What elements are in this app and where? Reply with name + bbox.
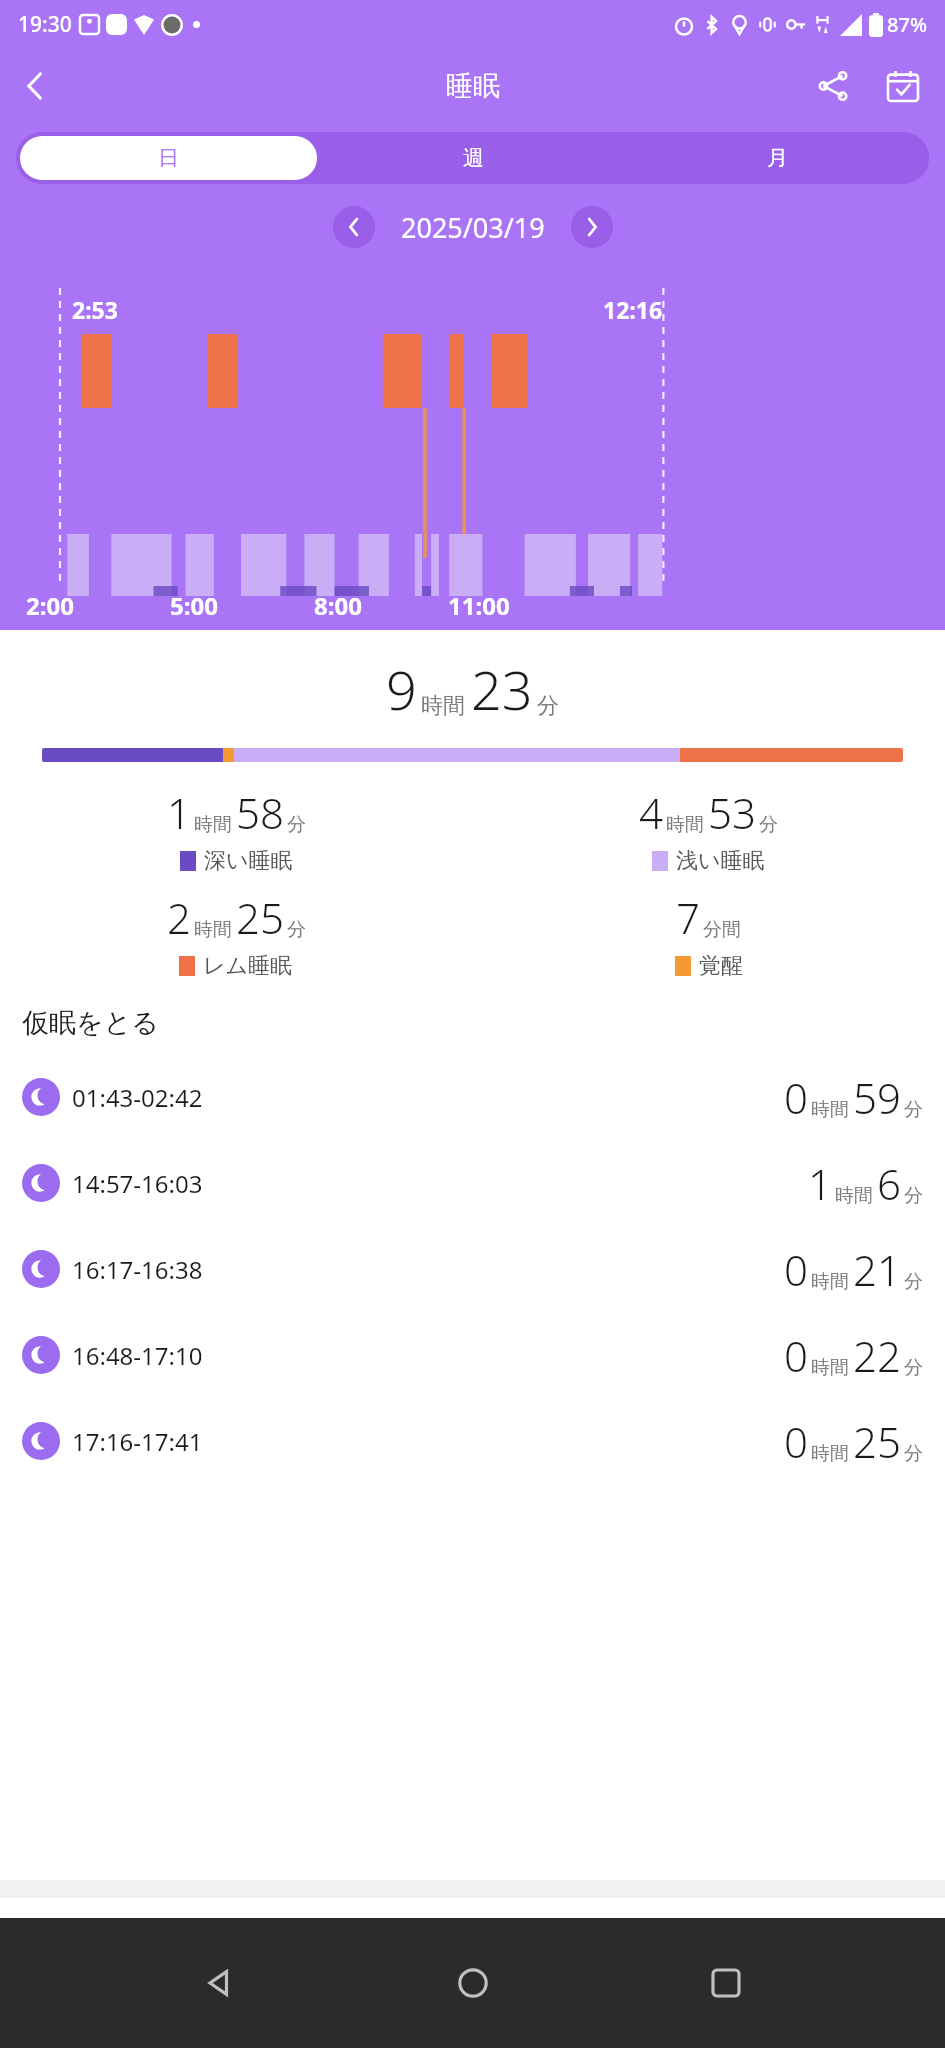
staticText: 53 [708, 784, 756, 841]
staticText: 時間 [811, 1270, 849, 1294]
button[interactable]: 月 [629, 136, 925, 180]
staticText: 分 [904, 1356, 923, 1380]
button[interactable]: Share [805, 58, 861, 114]
button[interactable]: 16:48-17:10 [0, 1312, 945, 1398]
staticText: 5:00 [170, 589, 218, 622]
staticText: 11:00 [448, 589, 510, 622]
staticText: 覚醒 [699, 952, 743, 980]
staticText: 7 [676, 889, 700, 946]
staticText: 分間 [703, 918, 741, 942]
staticText: 分 [904, 1442, 923, 1466]
button[interactable]: 14:57-16:03 [0, 1140, 945, 1226]
staticText: 0 [784, 1241, 808, 1298]
staticText: 睡眠 [446, 69, 500, 103]
staticText: 分 [287, 813, 306, 837]
button[interactable]: Back [184, 1948, 254, 2018]
staticText: 分 [904, 1270, 923, 1294]
button[interactable]: 週 [325, 136, 621, 180]
staticText: 9 [386, 652, 417, 726]
button[interactable]: Home [438, 1948, 508, 2018]
staticText: 月 [767, 145, 788, 171]
staticText: 浅い睡眠 [676, 847, 765, 875]
staticText: 0 [784, 1413, 808, 1470]
staticText: 分 [904, 1098, 923, 1122]
staticText: 1 [167, 784, 191, 841]
staticText: 分 [904, 1184, 923, 1208]
staticText: 01:43-02:42 [72, 1081, 203, 1114]
staticText: 14:57-16:03 [72, 1167, 203, 1200]
button[interactable]: 17:16-17:41 [0, 1398, 945, 1484]
staticText: 時間 [811, 1356, 849, 1380]
staticText: 日 [158, 145, 179, 171]
staticText: 87% [887, 11, 927, 38]
button[interactable]: 16:17-16:38 [0, 1226, 945, 1312]
staticText: 時間 [194, 918, 232, 942]
button[interactable]: 日 [20, 136, 317, 180]
staticText: 8:00 [314, 589, 362, 622]
staticText: 0 [784, 1069, 808, 1126]
staticText: 23 [471, 652, 533, 726]
staticText: 2:00 [26, 589, 74, 622]
staticText: 58 [236, 784, 284, 841]
staticText: 時間 [421, 692, 465, 720]
staticText: 22 [853, 1327, 901, 1384]
staticText: 深い睡眠 [204, 847, 293, 875]
staticText: 時間 [835, 1184, 873, 1208]
staticText: 16:17-16:38 [72, 1253, 203, 1286]
staticText: 59 [853, 1069, 901, 1126]
staticText: 分 [287, 918, 306, 942]
button[interactable]: Previous day [333, 206, 375, 248]
staticText: 時間 [811, 1442, 849, 1466]
staticText: 2:53 [72, 294, 118, 325]
button[interactable]: Calendar [875, 58, 931, 114]
staticText: 仮眠をとる [22, 1006, 159, 1040]
staticText: 0 [784, 1327, 808, 1384]
button[interactable]: Next day [571, 206, 613, 248]
staticText: 25 [853, 1413, 901, 1470]
staticText: 12:16 [603, 294, 663, 325]
staticText: 16:48-17:10 [72, 1339, 203, 1372]
button[interactable]: Recents [691, 1948, 761, 2018]
staticText: 4 [639, 784, 663, 841]
staticText: 25 [236, 889, 284, 946]
staticText: 17:16-17:41 [72, 1425, 203, 1458]
staticText: 6 [877, 1155, 901, 1212]
staticText: レム睡眠 [203, 952, 293, 980]
staticText: 2 [167, 889, 191, 946]
button[interactable]: Back [8, 58, 64, 114]
staticText: 分 [537, 692, 559, 720]
staticText: 分 [759, 813, 778, 837]
staticText: 時間 [194, 813, 232, 837]
button[interactable]: 01:43-02:42 [0, 1054, 945, 1140]
staticText: 時間 [666, 813, 704, 837]
staticText: 21 [853, 1241, 901, 1298]
staticText: 2025/03/19 [401, 209, 545, 246]
staticText: 時間 [811, 1098, 849, 1122]
staticText: 1 [808, 1155, 832, 1212]
staticText: 19:30 [18, 10, 72, 39]
staticText: 週 [463, 145, 484, 171]
